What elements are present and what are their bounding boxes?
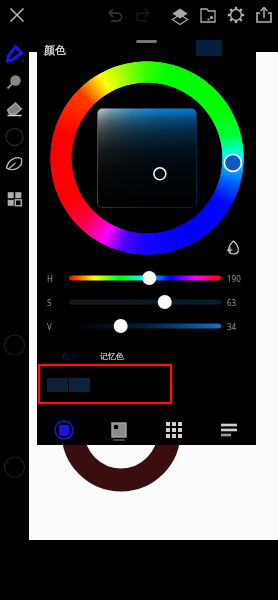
button[interactable]: Size: [0, 331, 29, 359]
button[interactable]: Redo: [130, 0, 156, 30]
button[interactable]: Opacity: [0, 453, 29, 481]
button[interactable]: Close: [3, 0, 31, 30]
staticText: 63: [227, 297, 237, 308]
button[interactable]: Transform: [0, 150, 29, 178]
button[interactable]: S: [37, 290, 256, 314]
button[interactable]: Share: [250, 0, 278, 30]
staticText: S: [47, 297, 52, 308]
button[interactable]: Sliders: [201, 415, 256, 445]
button[interactable]: Brush: [0, 40, 29, 68]
button[interactable]: Gallery: [194, 0, 222, 30]
button[interactable]: 色卡: [62, 351, 78, 361]
button[interactable]: Undo: [102, 0, 128, 30]
button[interactable]: Palette: [91, 415, 146, 445]
button[interactable]: Select: [0, 123, 29, 151]
button[interactable]: Tools: [0, 185, 29, 213]
button[interactable]: Current colour: [196, 40, 222, 56]
button[interactable]: Settings: [222, 0, 250, 30]
staticText: H: [47, 273, 53, 284]
button[interactable]: V: [37, 314, 256, 338]
button[interactable]: Smudge: [0, 68, 29, 96]
staticText: V: [47, 321, 52, 332]
button[interactable]: Swatches: [146, 415, 201, 445]
button[interactable]: 记忆色: [100, 351, 124, 361]
staticText: 190: [227, 273, 241, 284]
button[interactable]: [39, 365, 171, 403]
button[interactable]: H: [37, 266, 256, 290]
staticText: 34: [227, 321, 237, 332]
button[interactable]: Layers: [166, 0, 194, 30]
button[interactable]: Eyedropper: [221, 236, 245, 260]
button[interactable]: Colour wheel: [37, 415, 91, 445]
staticText: 颜色: [44, 43, 66, 57]
button[interactable]: Eraser: [0, 95, 29, 123]
